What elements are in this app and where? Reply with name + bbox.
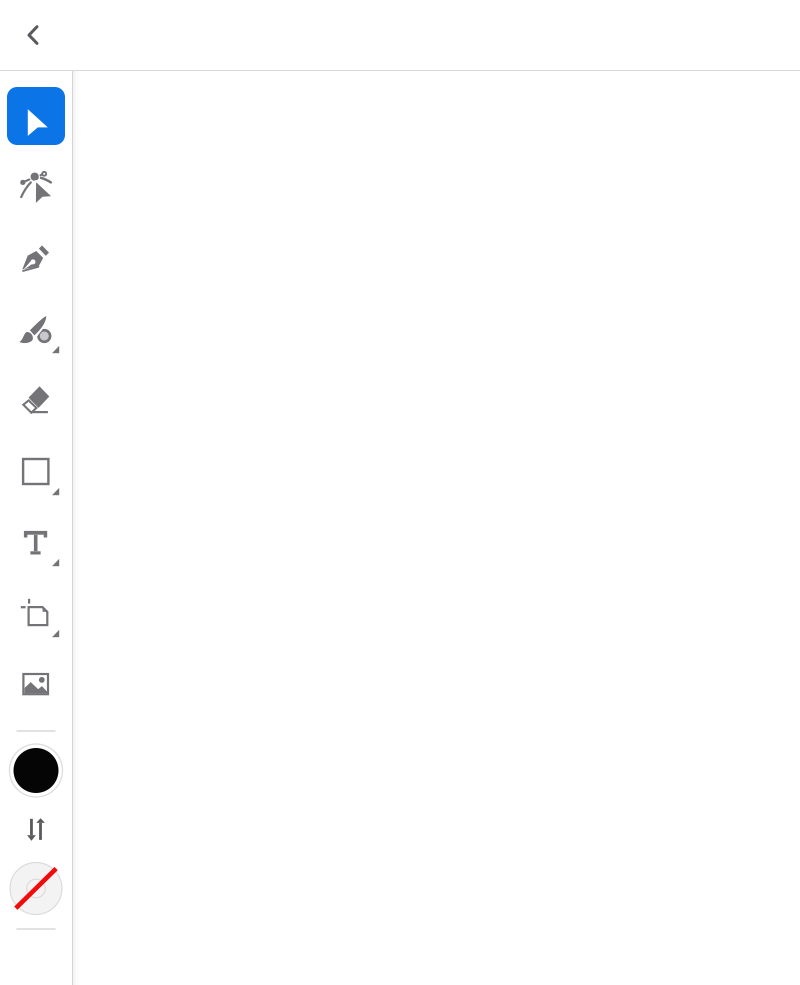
button[interactable]: Back — [0, 0, 66, 70]
button[interactable]: Shape — [0, 435, 72, 506]
button[interactable]: Crop — [0, 577, 72, 648]
button[interactable]: Text — [0, 506, 72, 577]
button[interactable]: Image — [0, 648, 72, 719]
button[interactable]: Eraser — [0, 364, 72, 435]
button[interactable]: Pen — [0, 222, 72, 293]
button[interactable]: Brush — [0, 293, 72, 364]
button[interactable]: No fill — [0, 860, 72, 917]
button[interactable]: Swap colours — [0, 799, 72, 860]
button[interactable]: Node select — [0, 151, 72, 222]
button[interactable]: Stroke colour — [0, 742, 72, 799]
button[interactable]: Select — [0, 80, 72, 151]
